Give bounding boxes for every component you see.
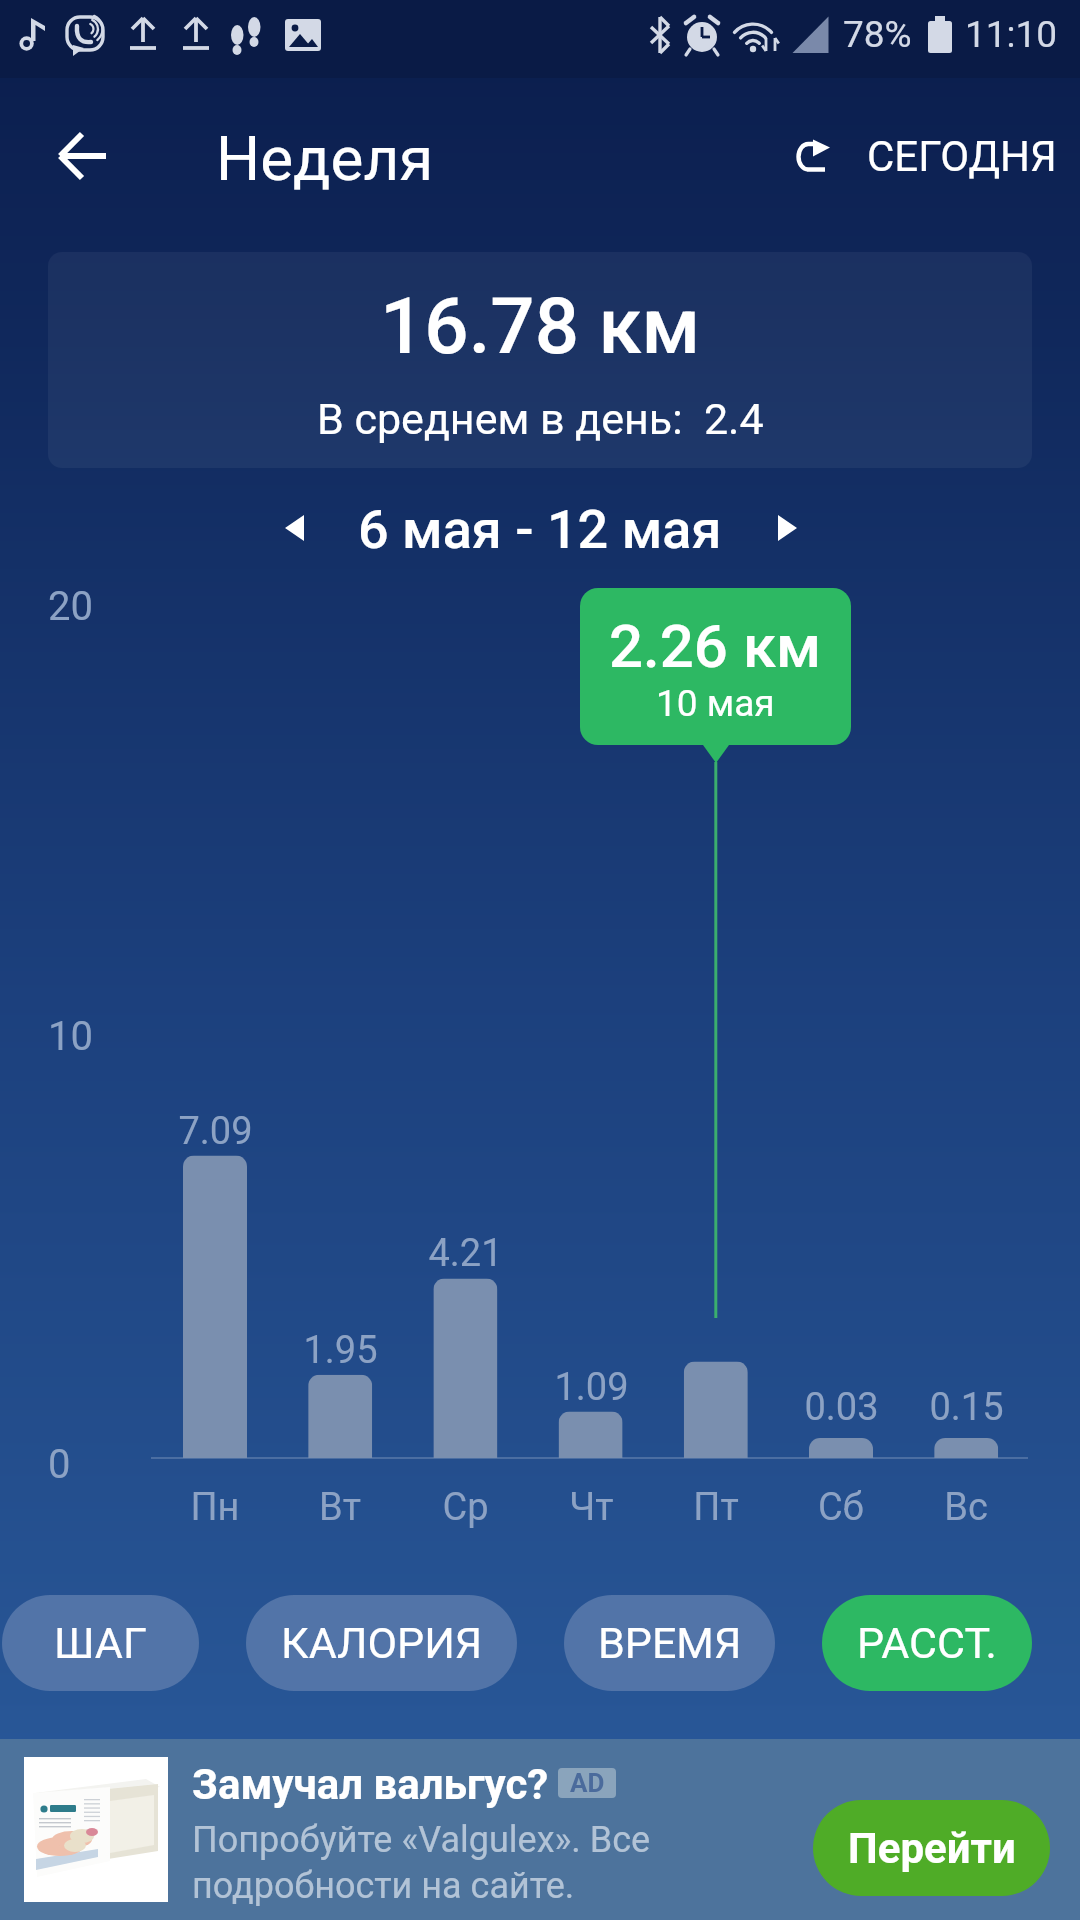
staticText: 4.21 bbox=[428, 1231, 503, 1276]
staticText: Неделя bbox=[216, 122, 434, 195]
button[interactable]: Перейти bbox=[813, 1800, 1050, 1896]
staticText: Пн bbox=[190, 1485, 240, 1530]
staticText: 10 bbox=[48, 1013, 93, 1060]
staticText: ВРЕМЯ bbox=[598, 1618, 742, 1668]
staticText: 20 bbox=[48, 583, 93, 630]
button[interactable]: СЕГОДНЯ bbox=[782, 108, 1071, 204]
button[interactable]: Back bbox=[32, 106, 132, 206]
staticText: Перейти bbox=[848, 1824, 1016, 1873]
staticText: Вт bbox=[319, 1485, 361, 1530]
staticText: 0.03 bbox=[804, 1385, 879, 1430]
staticText: КАЛОРИЯ bbox=[281, 1618, 483, 1668]
staticText: СЕГОДНЯ bbox=[867, 132, 1057, 181]
button[interactable]: Previous week bbox=[254, 488, 334, 568]
button[interactable]: КАЛОРИЯ bbox=[246, 1595, 517, 1691]
staticText: 0 bbox=[48, 1441, 71, 1488]
staticText: Чт bbox=[569, 1485, 614, 1530]
staticText: Замучал вальгус? bbox=[192, 1760, 549, 1809]
staticText: AD bbox=[570, 1768, 605, 1798]
staticText: 7.09 bbox=[178, 1109, 253, 1154]
staticText: РАССТ. bbox=[857, 1618, 997, 1668]
staticText: Пт bbox=[693, 1485, 739, 1530]
staticText: Ср bbox=[442, 1485, 489, 1530]
staticText: ШАГ bbox=[54, 1618, 147, 1668]
button[interactable]: Next week bbox=[747, 488, 827, 568]
button[interactable]: ШАГ bbox=[2, 1595, 199, 1691]
staticText: 78% bbox=[843, 13, 912, 56]
staticText: Сб bbox=[818, 1485, 864, 1530]
staticText: 1.09 bbox=[554, 1365, 629, 1410]
staticText: 0.15 bbox=[929, 1385, 1004, 1430]
staticText: 2.26 км bbox=[609, 611, 822, 681]
staticText: Попробуйте «Valgulex». Все подробности н… bbox=[192, 1819, 651, 1907]
staticText: 16.78 км bbox=[380, 281, 701, 372]
staticText: 1.95 bbox=[303, 1328, 378, 1373]
staticText: 11:10 bbox=[965, 13, 1058, 56]
staticText: 6 мая - 12 мая bbox=[358, 498, 722, 561]
staticText: В среднем в день: 2.4 bbox=[317, 394, 764, 444]
button[interactable]: РАССТ. bbox=[822, 1595, 1032, 1691]
button[interactable]: 2.26 км bbox=[580, 588, 851, 745]
staticText: Вс bbox=[944, 1485, 988, 1530]
button[interactable]: ВРЕМЯ bbox=[564, 1595, 775, 1691]
staticText: 10 мая bbox=[656, 682, 775, 725]
button[interactable]: 16.78 км bbox=[48, 252, 1032, 468]
button[interactable]: Реклама: Замучал вальгус? bbox=[0, 1739, 1080, 1920]
